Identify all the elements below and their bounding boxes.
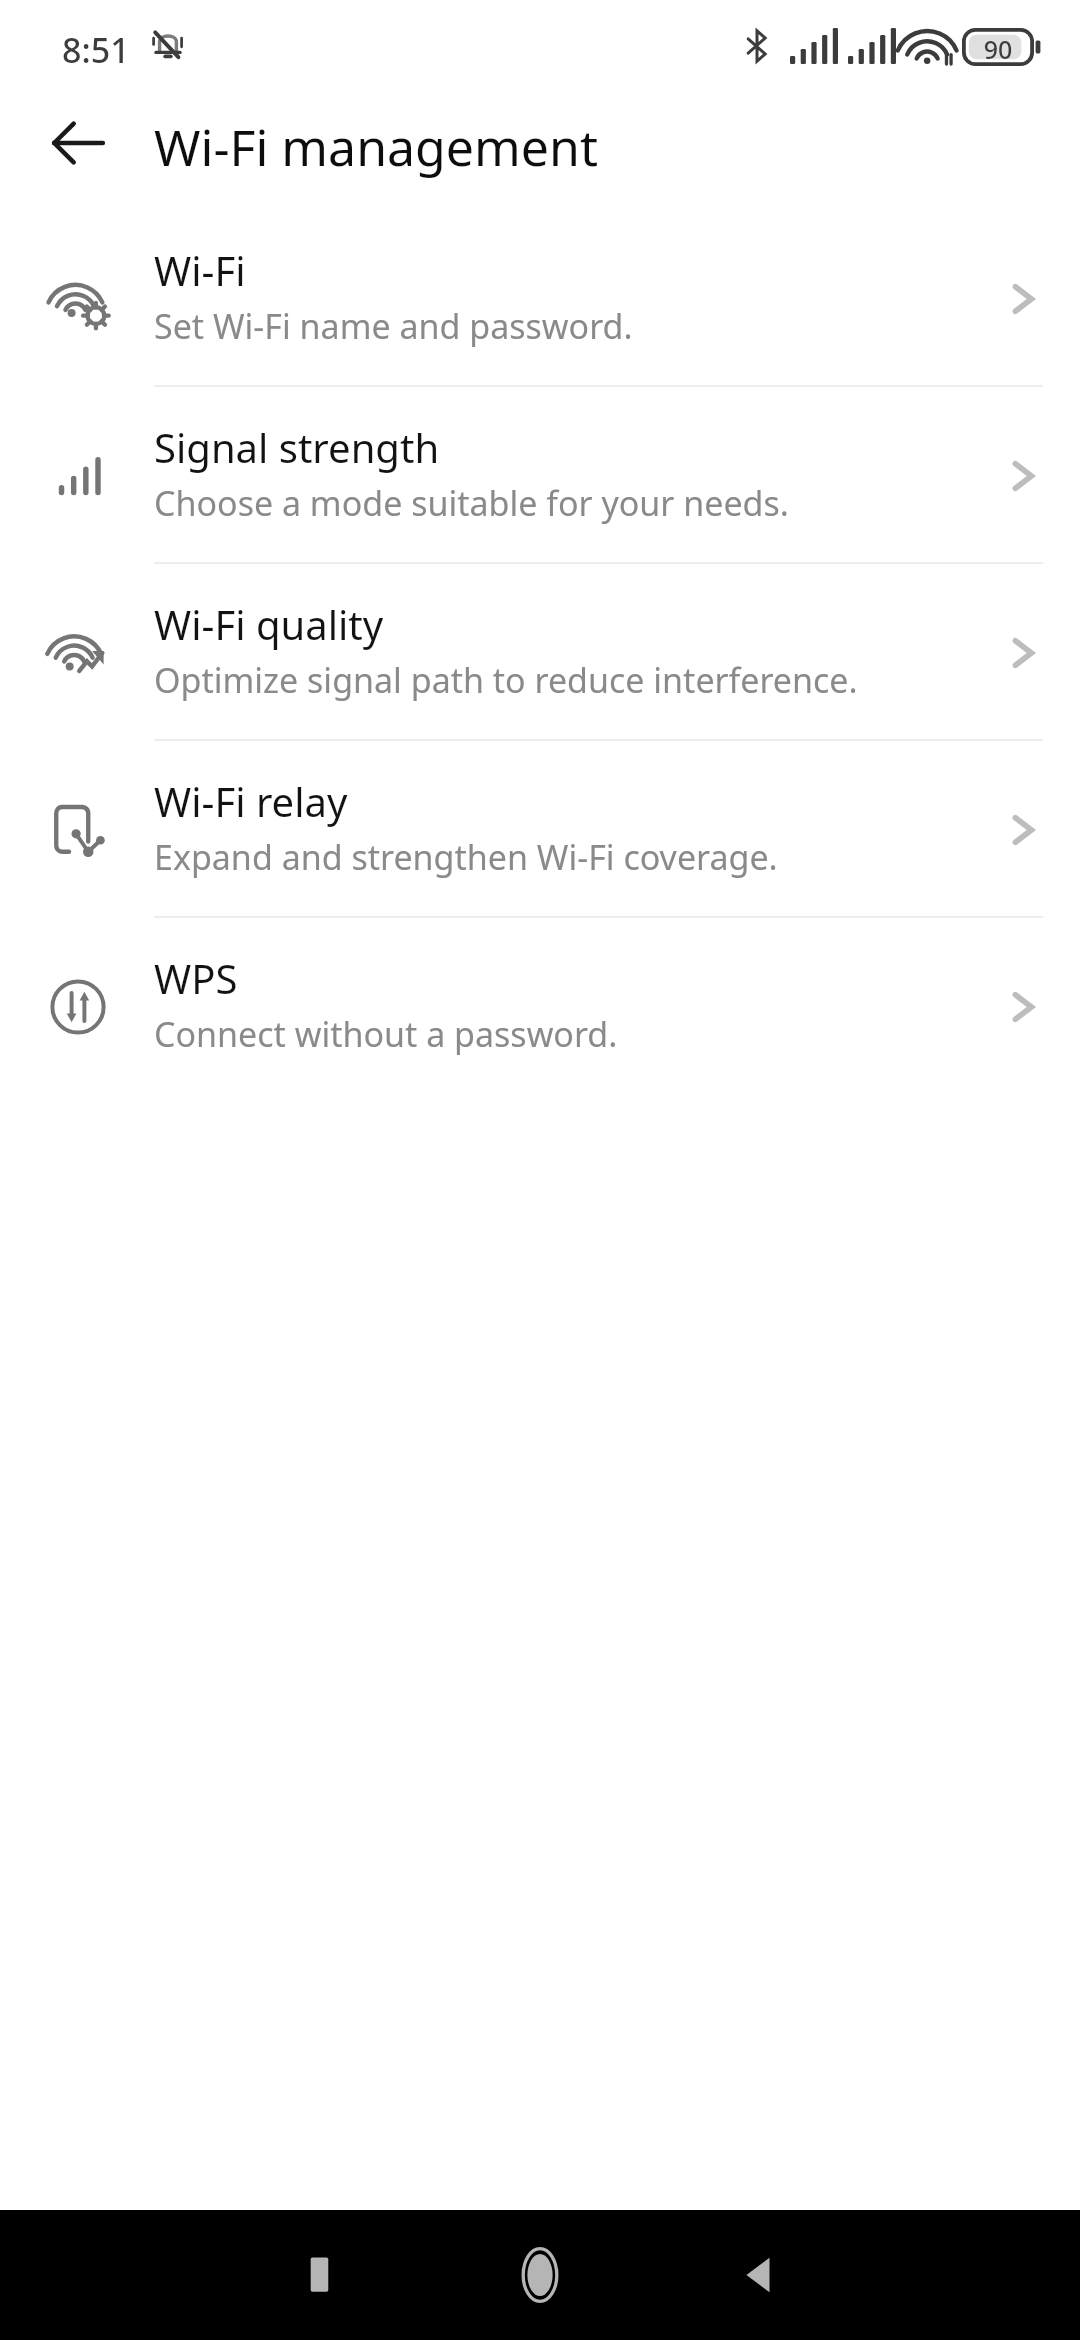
staticText: Set Wi-Fi name and password. <box>154 303 633 349</box>
button[interactable]: Back <box>702 2220 812 2330</box>
staticText: Wi-Fi <box>154 243 246 297</box>
button[interactable]: Recent apps <box>268 2220 378 2330</box>
staticText: Wi-Fi quality <box>154 597 384 651</box>
button[interactable]: Wi-Fi <box>0 210 1080 387</box>
button[interactable]: WPS <box>0 918 1080 1095</box>
staticText: Choose a mode suitable for your needs. <box>154 480 789 526</box>
staticText: Expand and strengthen Wi-Fi coverage. <box>154 834 778 880</box>
staticText: Wi-Fi management <box>154 113 598 181</box>
staticText: Optimize signal path to reduce interfere… <box>154 657 858 703</box>
button[interactable]: Wi-Fi relay <box>0 741 1080 918</box>
staticText: 90 <box>962 32 1034 66</box>
button[interactable]: Wi-Fi quality <box>0 564 1080 741</box>
staticText: 8:51 <box>62 27 130 73</box>
staticText: WPS <box>154 951 238 1005</box>
staticText: Wi-Fi relay <box>154 774 348 828</box>
staticText: Signal strength <box>154 420 440 474</box>
button[interactable]: Signal strength <box>0 387 1080 564</box>
button[interactable]: Back <box>30 95 126 191</box>
staticText: Connect without a password. <box>154 1011 618 1057</box>
button[interactable]: Home <box>485 2220 595 2330</box>
